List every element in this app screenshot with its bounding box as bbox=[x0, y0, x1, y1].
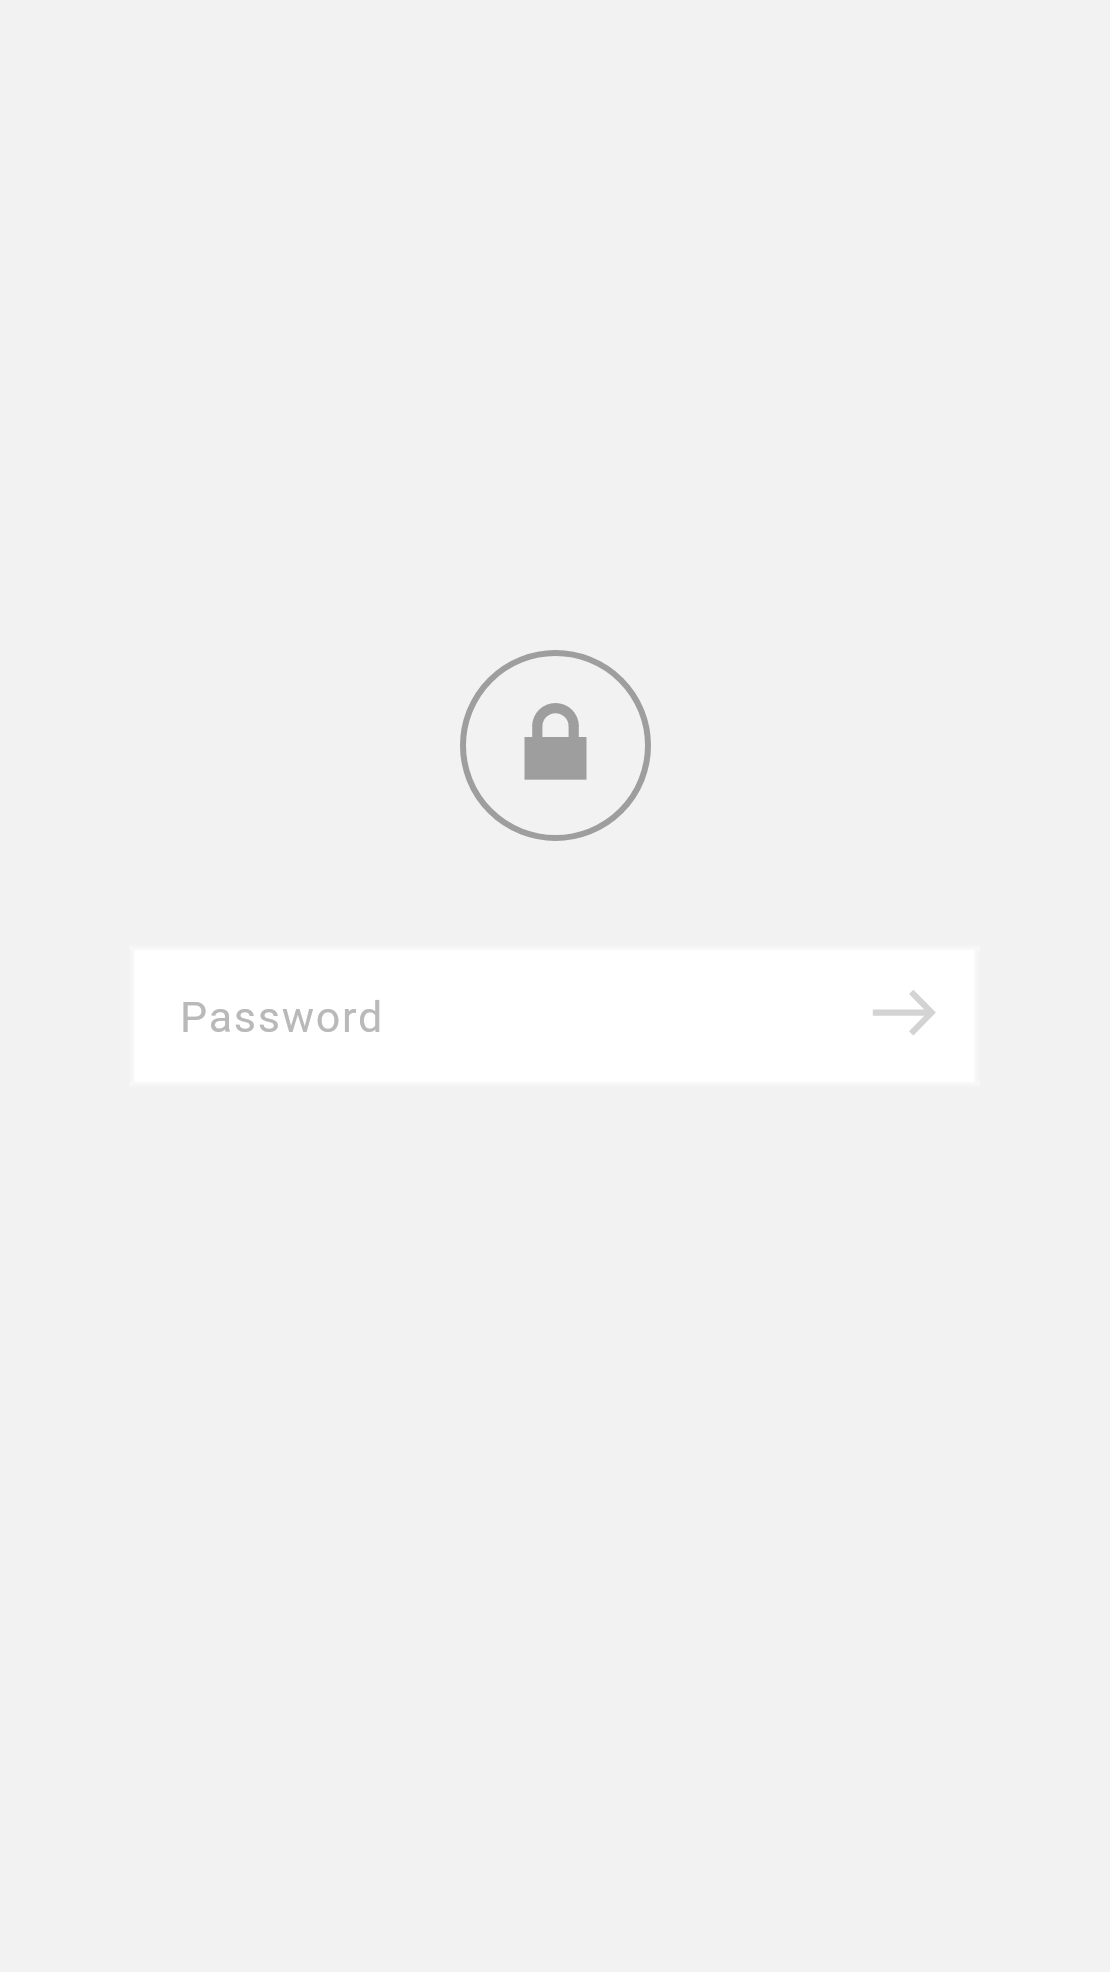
button[interactable]: Password field bbox=[135, 950, 974, 1082]
staticText: Password bbox=[180, 992, 384, 1042]
button[interactable]: Submit password bbox=[853, 952, 973, 1072]
button[interactable]: Locked bbox=[455, 645, 655, 845]
